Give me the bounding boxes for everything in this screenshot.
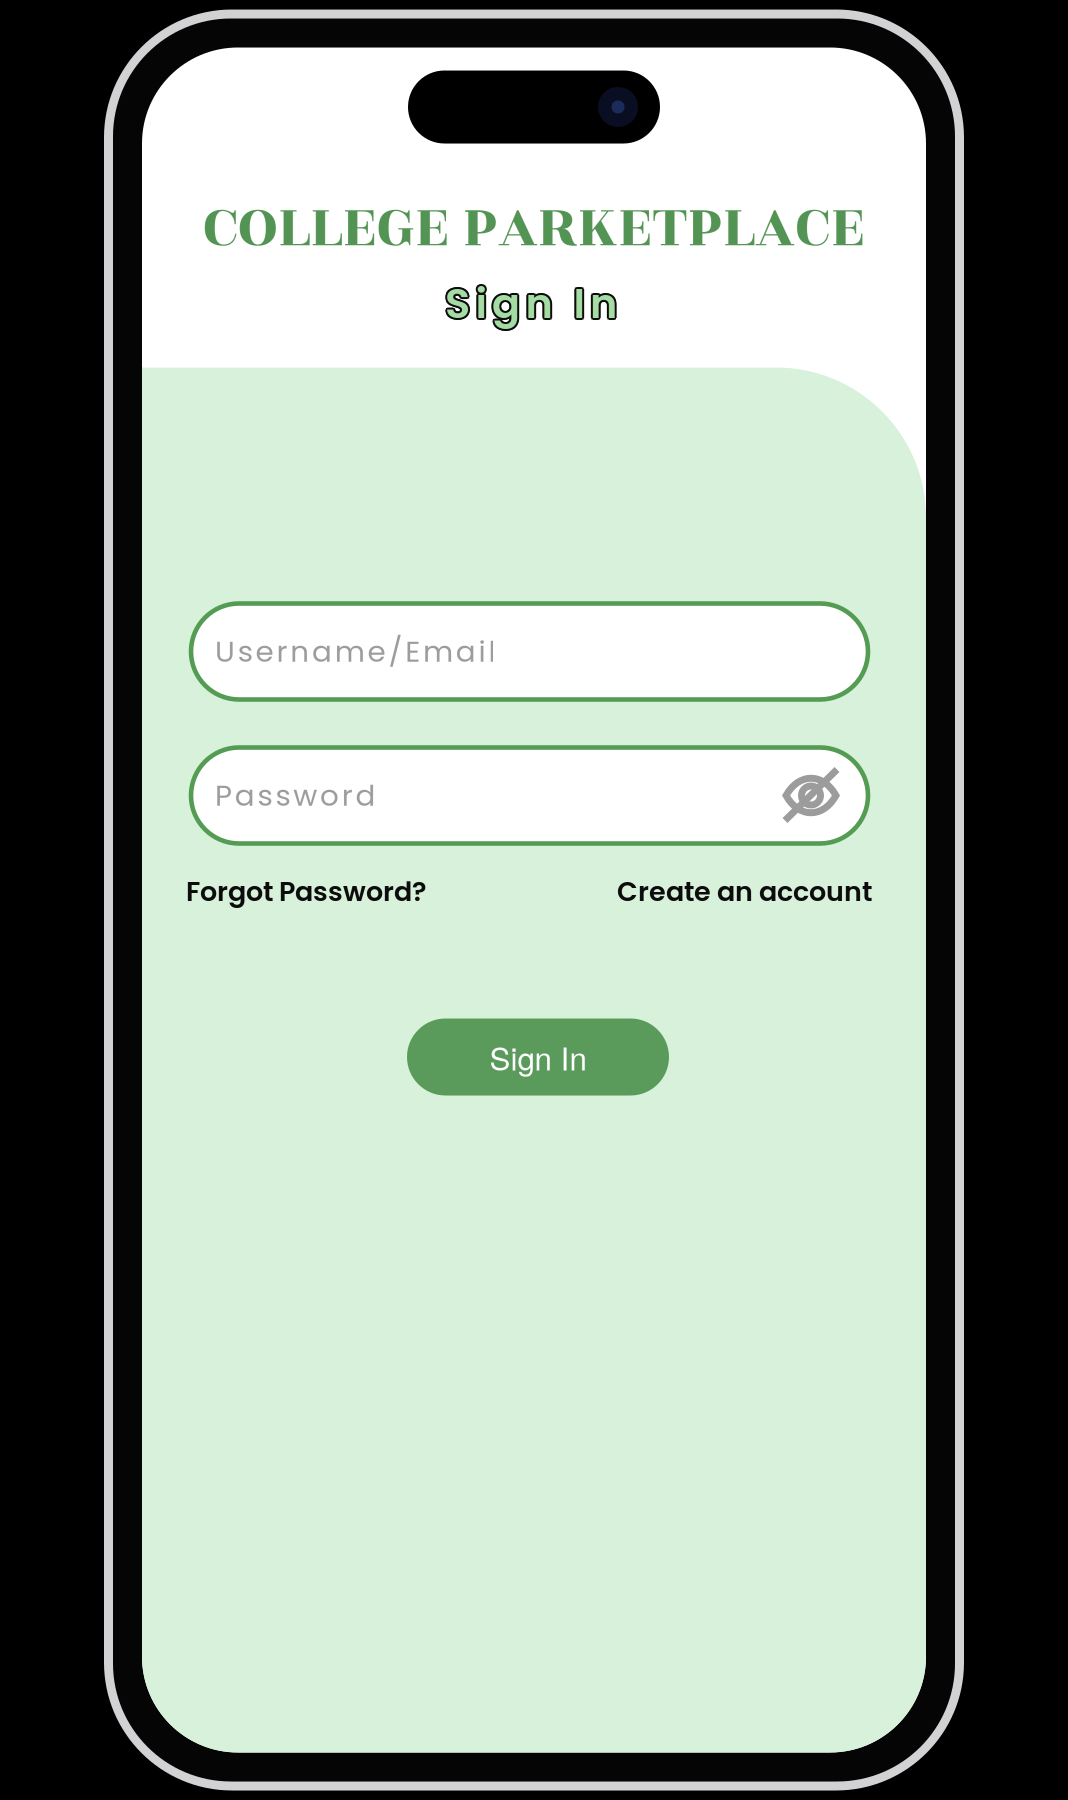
staticText: COLLEGE PARKETPLACE <box>203 183 865 271</box>
staticText: Sign In <box>444 276 616 334</box>
staticText: Sign In <box>489 1035 586 1079</box>
button[interactable]: Forgot Password? <box>186 865 426 918</box>
staticText: Sign In <box>445 277 617 334</box>
staticText: Sign In <box>444 273 616 331</box>
staticText: Sign In <box>446 276 618 334</box>
staticText: Forgot Password? <box>186 873 426 910</box>
staticText: Sign In <box>443 275 615 332</box>
staticText: Password <box>215 775 376 816</box>
staticText: Sign In <box>445 275 617 332</box>
staticText: Sign In <box>446 273 618 331</box>
button[interactable]: Create an account <box>617 865 872 918</box>
staticText: Sign In <box>445 273 617 330</box>
staticText: Sign In <box>447 275 619 332</box>
staticText: Username/Email <box>215 631 495 672</box>
button[interactable]: Sign In <box>407 1018 669 1095</box>
staticText: Create an account <box>617 873 872 910</box>
